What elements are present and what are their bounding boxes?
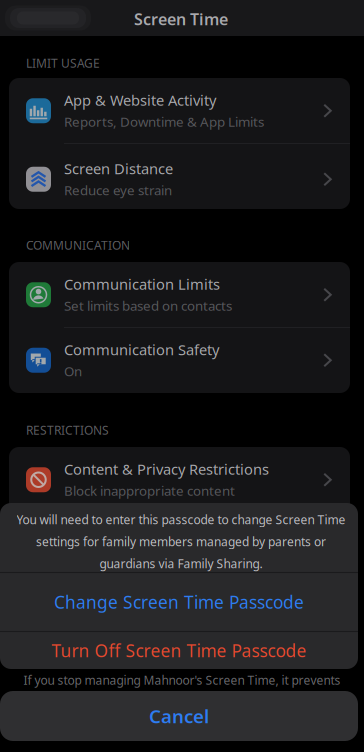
button[interactable]: Turn Off Screen Time Passcode — [0, 632, 358, 669]
staticText: Communication Limits — [64, 274, 220, 294]
staticText: App & Website Activity — [64, 90, 216, 110]
staticText: RESTRICTIONS — [26, 422, 109, 438]
staticText: Turn Off Screen Time Passcode — [51, 639, 306, 662]
staticText: Reports, Downtime & App Limits — [64, 113, 264, 130]
staticText: If you stop managing Mahnoor's Screen Ti… — [23, 672, 340, 688]
staticText: You will need to enter this passcode to … — [16, 511, 345, 527]
staticText: COMMUNICATION — [26, 237, 130, 253]
staticText: Reduce eye strain — [64, 181, 172, 199]
staticText: Set limits based on contacts — [64, 297, 232, 314]
staticText: Change Screen Time Passcode — [54, 590, 304, 613]
staticText: Screen Time — [134, 8, 228, 30]
button[interactable]: Back — [5, 5, 91, 30]
staticText: Cancel — [149, 704, 209, 728]
button[interactable]: Screen Distance — [9, 146, 350, 212]
button[interactable]: Cancel — [0, 691, 358, 741]
staticText: Content & Privacy Restrictions — [64, 459, 269, 479]
staticText: Block inappropriate content — [64, 482, 235, 499]
staticText: Communication Safety — [64, 340, 219, 359]
staticText: settings for family members managed by p… — [36, 533, 326, 549]
button[interactable]: Communication Limits — [9, 262, 350, 327]
staticText: On — [64, 362, 82, 380]
button[interactable]: Content & Privacy Restrictions — [9, 447, 350, 512]
staticText: LIMIT USAGE — [26, 55, 100, 71]
button[interactable]: Communication Safety — [9, 327, 350, 393]
staticText: Screen Distance — [64, 159, 173, 178]
button[interactable]: Change Screen Time Passcode — [0, 573, 358, 631]
staticText: guardians via Family Sharing. — [99, 555, 262, 571]
button[interactable]: App & Website Activity — [9, 78, 350, 143]
